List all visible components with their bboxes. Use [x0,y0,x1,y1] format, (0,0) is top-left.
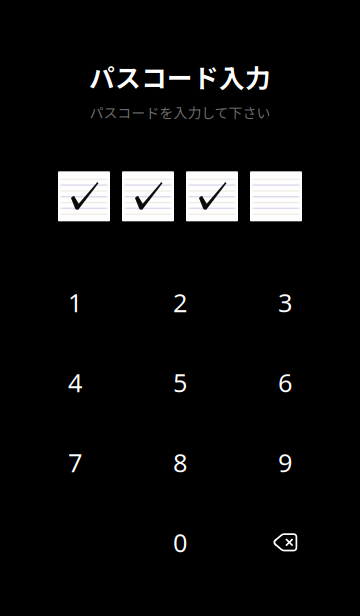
staticText: パスコードを入力して下さい [89,102,270,122]
staticText: 3 [278,285,292,319]
staticText: 9 [278,445,292,479]
button[interactable]: 8 [127,422,232,502]
staticText: 4 [68,365,82,399]
staticText: パスコード入力 [89,58,271,95]
button[interactable]: 3 [232,262,337,342]
button[interactable]: 5 [127,342,232,422]
staticText: 8 [173,445,187,479]
staticText: 6 [278,365,292,399]
staticText: 2 [173,285,187,319]
staticText: 0 [173,525,187,559]
staticText: 1 [68,285,82,319]
button[interactable]: 2 [127,262,232,342]
button[interactable]: 4 [22,342,127,422]
button[interactable]: 0 [127,502,232,582]
staticText: 5 [173,365,187,399]
button[interactable]: 9 [232,422,337,502]
button[interactable]: Delete [232,502,337,582]
button[interactable]: 6 [232,342,337,422]
staticText: 7 [68,445,82,479]
button[interactable]: 7 [22,422,127,502]
button[interactable]: 1 [22,262,127,342]
